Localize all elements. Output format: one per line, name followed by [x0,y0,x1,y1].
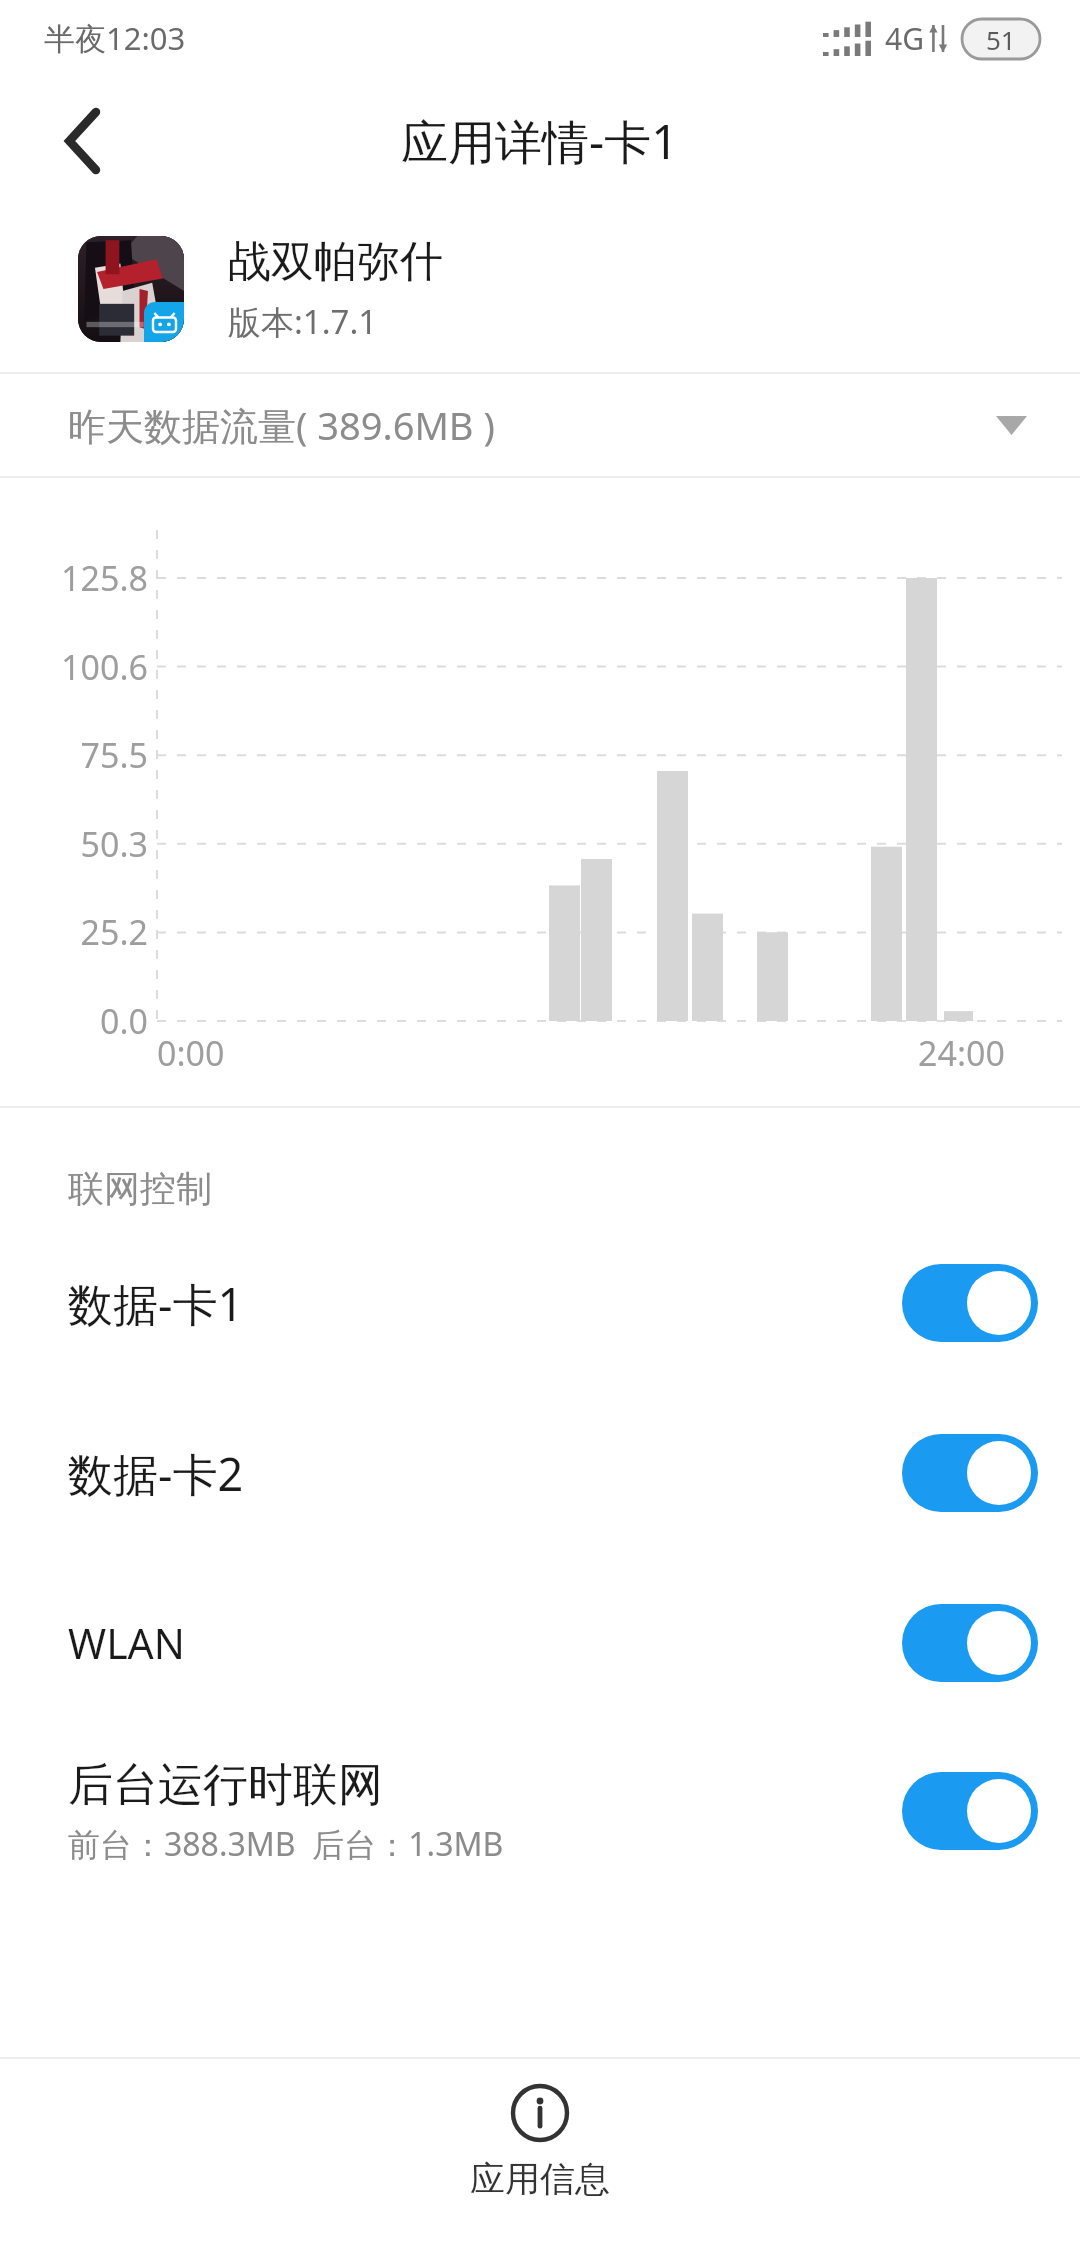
button[interactable]: 昨天数据流量( 389.6MB ) [0,374,1080,476]
staticText: WLAN [68,1615,185,1671]
other: Expand period selector [984,398,1038,452]
staticText: 24:00 [918,1030,1005,1076]
button[interactable]: 后台运行时联网 [0,1751,1080,1871]
staticText: 半夜12:03 [44,17,186,59]
staticText: 0:00 [157,1030,225,1076]
button[interactable]: 应用信息 [415,2083,665,2201]
staticText: 应用详情-卡1 [401,109,679,173]
staticText: 0.0 [99,998,148,1044]
button[interactable]: Toggle, on [902,1772,1038,1850]
staticText: 数据-卡1 [68,1273,244,1334]
button[interactable]: 数据-卡2 [0,1425,1080,1521]
staticText: 昨天数据流量( 389.6MB ) [68,399,495,451]
button[interactable]: Toggle, on [902,1434,1038,1512]
staticText: 125.8 [61,555,148,601]
staticText: 4G [885,18,924,59]
staticText: 50.3 [80,821,148,867]
staticText: 前台：388.3MB 后台：1.3MB [68,1822,504,1866]
staticText: 100.6 [61,644,148,690]
button[interactable]: Back [34,92,132,190]
staticText: 数据-卡2 [68,1443,244,1504]
staticText: 联网控制 [68,1166,212,1211]
button[interactable]: Toggle, on [902,1604,1038,1682]
button[interactable]: 数据-卡1 [0,1255,1080,1351]
staticText: 战双帕弥什 [228,235,443,289]
button[interactable]: WLAN [0,1595,1080,1691]
button[interactable]: Toggle, on [902,1264,1038,1342]
staticText: 51 [986,22,1016,57]
button[interactable]: 战双帕弥什 [0,206,1080,372]
staticText: 后台运行时联网 [68,1757,383,1814]
staticText: 75.5 [80,732,148,778]
staticText: 版本:1.7.1 [228,299,378,344]
staticText: 25.2 [80,909,148,955]
staticText: 应用信息 [470,2157,610,2201]
